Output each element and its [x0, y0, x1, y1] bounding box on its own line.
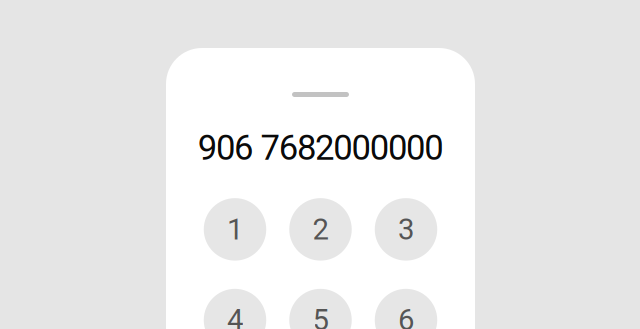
button[interactable]: 4 — [204, 289, 266, 329]
button[interactable]: 3 — [375, 198, 437, 261]
staticText: 5 — [312, 303, 328, 329]
button[interactable]: 2 — [289, 198, 352, 261]
staticText: 2 — [312, 212, 328, 247]
staticText: 4 — [227, 303, 243, 329]
staticText: 906 7682000000 — [198, 127, 443, 168]
staticText: 3 — [398, 212, 414, 247]
button[interactable]: 6 — [375, 289, 437, 329]
staticText: 6 — [398, 303, 414, 329]
button[interactable]: 1 — [204, 198, 266, 261]
button[interactable]: 5 — [289, 289, 352, 329]
staticText: 1 — [227, 212, 243, 247]
